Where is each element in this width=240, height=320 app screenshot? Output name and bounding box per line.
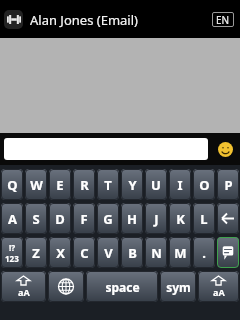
button[interactable]: O <box>193 169 215 200</box>
staticText: Z <box>32 244 40 262</box>
button[interactable]: Backspace <box>217 203 239 234</box>
button[interactable]: A <box>1 203 23 234</box>
staticText: N <box>151 244 162 262</box>
staticText: I <box>177 176 183 194</box>
staticText: Alan Jones (Email) <box>30 11 138 29</box>
staticText: B <box>128 244 137 262</box>
button[interactable]: Emoji <box>216 140 234 158</box>
button[interactable] <box>4 138 208 160</box>
button[interactable]: H <box>121 203 143 234</box>
button[interactable]: sym <box>160 271 196 302</box>
staticText: H <box>127 210 137 228</box>
button[interactable]: Change language <box>48 271 84 302</box>
button[interactable]: J <box>145 203 167 234</box>
staticText: !? <box>9 242 16 253</box>
staticText: C <box>80 244 89 262</box>
button[interactable]: V <box>97 237 119 268</box>
button[interactable]: G <box>97 203 119 234</box>
button[interactable]: M <box>169 237 191 268</box>
staticText: V <box>104 244 113 262</box>
staticText: U <box>151 176 161 194</box>
staticText: S <box>32 210 40 228</box>
button[interactable]: N <box>145 237 167 268</box>
staticText: Y <box>128 176 137 194</box>
button[interactable]: Symbols and numbers <box>1 237 23 268</box>
button[interactable]: F <box>73 203 95 234</box>
staticText: aA <box>213 286 225 298</box>
staticText: R <box>80 176 89 194</box>
staticText: O <box>199 176 210 194</box>
button[interactable]: S <box>25 203 47 234</box>
button[interactable]: E <box>49 169 71 200</box>
button[interactable]: D <box>49 203 71 234</box>
button[interactable]: R <box>73 169 95 200</box>
button[interactable]: U <box>145 169 167 200</box>
button[interactable]: space <box>86 271 158 302</box>
staticText: X <box>56 244 65 262</box>
staticText: W <box>30 176 43 194</box>
button[interactable]: Shift <box>1 271 46 302</box>
staticText: D <box>55 210 65 228</box>
staticText: F <box>80 210 88 228</box>
staticText: G <box>103 210 113 228</box>
button[interactable]: . <box>193 237 215 268</box>
staticText: T <box>104 176 112 194</box>
staticText: E <box>56 176 64 194</box>
staticText: J <box>154 210 159 228</box>
staticText: M <box>174 244 187 262</box>
staticText: L <box>200 210 208 228</box>
staticText: space <box>105 279 140 295</box>
staticText: A <box>8 210 17 228</box>
staticText: K <box>176 210 185 228</box>
button[interactable]: App icon <box>4 10 23 29</box>
staticText: 123 <box>5 253 19 264</box>
staticText: . <box>202 244 206 262</box>
button[interactable]: X <box>49 237 71 268</box>
button[interactable]: B <box>121 237 143 268</box>
button[interactable]: Z <box>25 237 47 268</box>
button[interactable]: Q <box>1 169 23 200</box>
button[interactable]: Send <box>217 237 239 268</box>
staticText: P <box>224 176 233 194</box>
button[interactable]: Y <box>121 169 143 200</box>
button[interactable]: L <box>193 203 215 234</box>
button[interactable]: K <box>169 203 191 234</box>
button[interactable]: I <box>169 169 191 200</box>
button[interactable]: EN <box>212 12 234 27</box>
button[interactable]: C <box>73 237 95 268</box>
button[interactable]: Shift <box>198 271 239 302</box>
staticText: Q <box>7 176 18 194</box>
button[interactable]: W <box>25 169 47 200</box>
button[interactable]: P <box>217 169 239 200</box>
staticText: sym <box>166 279 191 295</box>
button[interactable]: T <box>97 169 119 200</box>
staticText: EN <box>216 13 230 27</box>
staticText: aA <box>18 286 30 298</box>
